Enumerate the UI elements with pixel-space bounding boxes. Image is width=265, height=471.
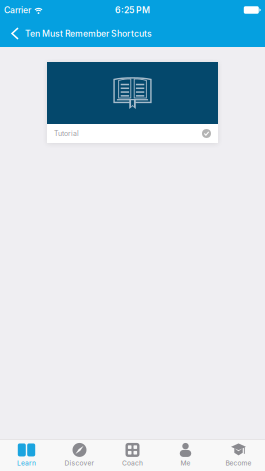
button[interactable]: Coach [106,440,159,471]
staticText: Become [225,459,251,467]
button[interactable]: Ten Must Remember Shortcuts [0,20,160,47]
staticText: 6:25 PM [115,5,150,15]
button[interactable]: Become [212,440,265,471]
staticText: Coach [122,459,143,467]
staticText: Ten Must Remember Shortcuts [25,28,152,39]
staticText: Learn [17,459,36,467]
staticText: Carrier [4,5,31,15]
staticText: Tutorial [54,129,79,138]
button[interactable]: Tutorial [47,62,218,143]
button[interactable]: Discover [53,440,106,471]
button[interactable]: Me [159,440,212,471]
staticText: Discover [64,459,94,467]
button[interactable]: Learn [0,440,53,471]
staticText: Me [180,459,190,467]
